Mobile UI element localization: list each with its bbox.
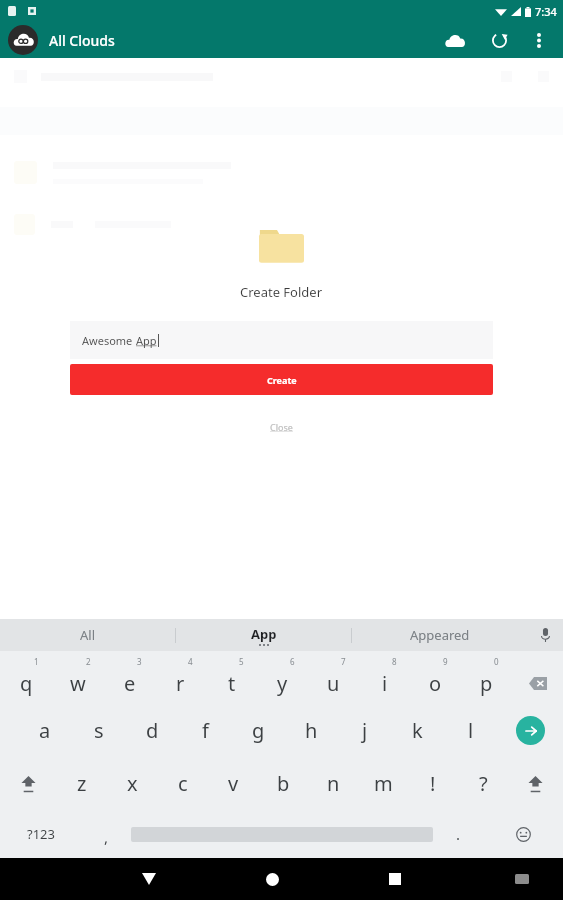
staticText: t (228, 670, 236, 697)
staticText: . (456, 824, 461, 844)
staticText: f (202, 717, 209, 744)
staticText: ? (479, 770, 488, 797)
button[interactable]: v (208, 757, 258, 810)
button[interactable]: 0 (461, 651, 512, 704)
button[interactable]: a (18, 704, 72, 757)
staticText: 2 (86, 656, 91, 667)
staticText: App (136, 333, 157, 348)
button[interactable]: x (107, 757, 158, 810)
button[interactable]: h (285, 704, 338, 757)
staticText: 8 (392, 656, 397, 667)
button[interactable]: Shift (508, 757, 563, 810)
button[interactable]: Home (251, 858, 293, 900)
staticText: s (94, 717, 104, 744)
button[interactable]: k (391, 704, 444, 757)
button[interactable]: 1 (0, 651, 52, 704)
button[interactable]: App (176, 619, 351, 651)
button[interactable]: Voice input (527, 619, 563, 651)
staticText: Create Folder (240, 283, 323, 301)
staticText: j (362, 717, 368, 744)
button[interactable]: n (308, 757, 358, 810)
staticText: a (39, 717, 51, 744)
button[interactable]: More options (521, 22, 557, 58)
button[interactable]: , (81, 810, 131, 858)
staticText: g (252, 717, 265, 744)
button[interactable]: f (179, 704, 232, 757)
button[interactable]: Space (131, 810, 433, 858)
staticText: 5 (239, 656, 244, 667)
button[interactable]: 7 (308, 651, 359, 704)
staticText: Create (267, 374, 297, 386)
staticText: u (327, 670, 340, 697)
staticText: r (176, 670, 185, 697)
staticText: All (80, 626, 96, 644)
staticText: Appeared (410, 626, 470, 644)
button[interactable]: ?123 (0, 810, 81, 858)
staticText: k (412, 717, 423, 744)
staticText: v (228, 770, 239, 797)
button[interactable]: g (232, 704, 285, 757)
button[interactable]: Backspace (512, 651, 563, 704)
staticText: , (104, 827, 109, 847)
staticText: m (374, 770, 393, 797)
button[interactable]: ? (458, 757, 508, 810)
button[interactable]: All Clouds logo (8, 25, 38, 55)
button[interactable]: Enter (497, 704, 563, 757)
button[interactable]: . (433, 810, 483, 858)
button[interactable]: s (72, 704, 126, 757)
staticText: l (468, 717, 474, 744)
staticText: 6 (290, 656, 295, 667)
button[interactable]: z (56, 757, 107, 810)
button[interactable]: b (258, 757, 308, 810)
button[interactable]: 5 (206, 651, 257, 704)
button[interactable]: 6 (257, 651, 308, 704)
staticText: 1 (34, 656, 39, 667)
staticText: 4 (188, 656, 193, 667)
button[interactable]: j (338, 704, 391, 757)
button[interactable]: Create (70, 364, 493, 395)
staticText: p (480, 670, 493, 697)
staticText: 7 (341, 656, 346, 667)
staticText: w (70, 670, 86, 697)
button[interactable]: 3 (104, 651, 155, 704)
staticText: 0 (494, 656, 499, 667)
staticText: h (305, 717, 318, 744)
staticText: 9 (443, 656, 448, 667)
button[interactable]: All (0, 619, 175, 651)
button[interactable]: Back (128, 858, 170, 900)
button[interactable]: 9 (410, 651, 461, 704)
button[interactable]: Close (256, 417, 307, 437)
button[interactable]: ! (408, 757, 458, 810)
button[interactable]: 8 (359, 651, 410, 704)
staticText: x (127, 770, 138, 797)
button[interactable]: l (444, 704, 497, 757)
staticText: ?123 (27, 825, 55, 843)
button[interactable]: 2 (52, 651, 104, 704)
staticText: ! (430, 770, 436, 797)
staticText: 3 (137, 656, 142, 667)
button[interactable]: d (126, 704, 179, 757)
button[interactable]: Refresh (481, 22, 517, 58)
staticText: Awesome (82, 333, 136, 348)
staticText: y (277, 670, 288, 697)
staticText: e (124, 670, 136, 697)
button[interactable]: Cloud (437, 22, 473, 58)
staticText: n (327, 770, 340, 797)
button[interactable]: c (158, 757, 208, 810)
button[interactable]: Change keyboard (501, 858, 543, 900)
staticText: All Clouds (49, 31, 115, 50)
button[interactable]: Recents (374, 858, 416, 900)
button[interactable]: Shift (0, 757, 56, 810)
button[interactable]: m (358, 757, 408, 810)
staticText: c (178, 770, 188, 797)
button[interactable]: 4 (155, 651, 206, 704)
staticText: d (146, 717, 159, 744)
staticText: q (20, 670, 33, 697)
staticText: o (429, 670, 442, 697)
button[interactable]: Awesome (70, 321, 493, 359)
staticText: z (77, 770, 87, 797)
staticText: Close (270, 421, 293, 433)
button[interactable]: Appeared (352, 619, 527, 651)
staticText: 7:34 (535, 4, 557, 19)
button[interactable]: Emoji (483, 810, 563, 858)
